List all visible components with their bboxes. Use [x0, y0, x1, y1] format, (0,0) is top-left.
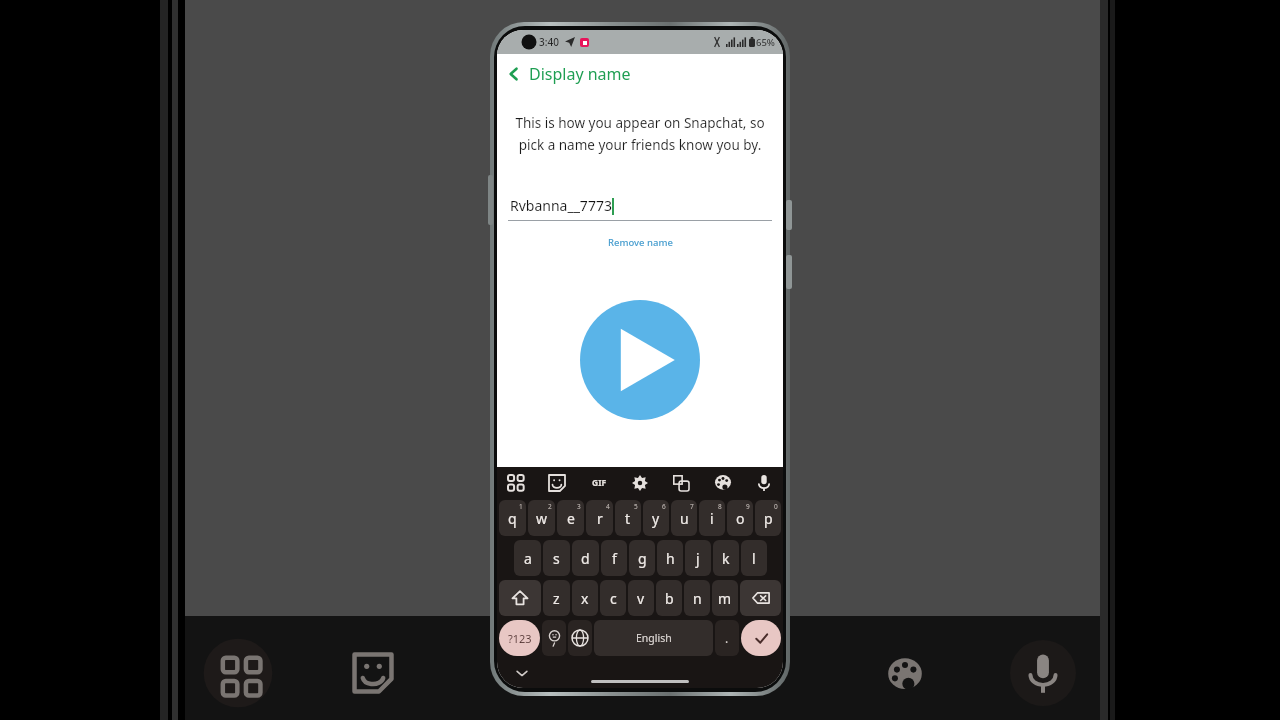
staticText: x [581, 589, 589, 608]
button[interactable]: s [543, 540, 570, 576]
button[interactable]: Backspace [740, 580, 781, 616]
staticText: z [553, 589, 560, 608]
button[interactable]: h [657, 540, 683, 576]
staticText: 5 [634, 502, 638, 511]
staticText: Remove name [608, 236, 673, 249]
staticText: 3 [577, 502, 581, 511]
other: Back [507, 67, 521, 81]
staticText: i [710, 509, 714, 528]
staticText: m [718, 589, 732, 608]
button[interactable]: Hide keyboard [515, 666, 529, 680]
button[interactable]: q [499, 500, 526, 536]
staticText: y [652, 509, 660, 528]
button[interactable]: Apps [503, 470, 529, 496]
button[interactable]: j [685, 540, 711, 576]
button[interactable]: Stickers [544, 470, 570, 496]
button[interactable]: g [629, 540, 655, 576]
staticText: t [625, 509, 631, 528]
staticText: 0 [774, 502, 778, 511]
button[interactable]: k [713, 540, 739, 576]
staticText: u [680, 509, 689, 528]
staticText: s [553, 549, 560, 568]
button[interactable]: l [741, 540, 767, 576]
button[interactable]: p [755, 500, 781, 536]
staticText: 9 [746, 502, 750, 511]
staticText: v [637, 589, 645, 608]
button[interactable]: Play [563, 283, 717, 437]
button[interactable]: t [615, 500, 641, 536]
button[interactable]: z [543, 580, 570, 616]
button[interactable]: Emoji [542, 620, 566, 656]
staticText: 1 [519, 502, 523, 511]
staticText: a [524, 549, 532, 568]
staticText: r [597, 509, 603, 528]
staticText: j [696, 549, 700, 568]
button[interactable]: u [671, 500, 697, 536]
button[interactable]: y [643, 500, 669, 536]
button[interactable]: e [557, 500, 584, 536]
button[interactable]: Theme [710, 470, 736, 496]
button[interactable]: v [628, 580, 654, 616]
button[interactable]: n [684, 580, 710, 616]
staticText: 3:40 [539, 35, 559, 49]
button[interactable]: c [600, 580, 626, 616]
staticText: 65% [756, 36, 775, 49]
button[interactable]: a [514, 540, 541, 576]
staticText: English [636, 631, 672, 645]
button[interactable]: Settings [627, 470, 653, 496]
button[interactable]: ?123 [499, 620, 540, 656]
button[interactable]: GIF [586, 470, 612, 496]
staticText: e [567, 509, 575, 528]
staticText: c [610, 589, 617, 608]
staticText: Display name [529, 63, 631, 85]
staticText: 6 [662, 502, 666, 511]
staticText: l [752, 549, 756, 568]
button[interactable]: r [586, 500, 613, 536]
button[interactable]: m [712, 580, 738, 616]
staticText: This is how you appear on Snapchat, so p… [505, 114, 775, 154]
staticText: Rvbanna__7773 [510, 196, 612, 215]
button[interactable]: Voice input [751, 470, 777, 496]
button[interactable]: . [715, 620, 739, 656]
staticText: o [736, 509, 745, 528]
button[interactable]: Change language [568, 620, 592, 656]
staticText: f [612, 549, 617, 568]
staticText: d [581, 549, 590, 568]
button[interactable]: English [594, 620, 713, 656]
button[interactable]: w [528, 500, 555, 536]
staticText: w [536, 509, 548, 528]
staticText: . [725, 630, 729, 646]
button[interactable]: x [572, 580, 598, 616]
staticText: GIF [592, 477, 607, 489]
button[interactable]: Remove name [497, 236, 783, 249]
staticText: ?123 [508, 631, 532, 646]
staticText: 8 [718, 502, 722, 511]
staticText: n [693, 589, 702, 608]
staticText: 7 [690, 502, 694, 511]
button[interactable]: b [656, 580, 682, 616]
button[interactable]: Enter [741, 620, 781, 656]
button[interactable]: i [699, 500, 725, 536]
staticText: 4 [606, 502, 610, 511]
staticText: h [666, 549, 675, 568]
button[interactable]: d [572, 540, 599, 576]
button[interactable]: Back [497, 54, 783, 94]
staticText: b [665, 589, 674, 608]
staticText: g [638, 549, 647, 568]
staticText: k [722, 549, 730, 568]
button[interactable]: f [601, 540, 627, 576]
staticText: p [764, 509, 773, 528]
staticText: 2 [548, 502, 552, 511]
button[interactable]: o [727, 500, 753, 536]
button[interactable]: Translate [668, 470, 694, 496]
staticText: q [508, 509, 517, 528]
button[interactable]: Shift [499, 580, 541, 616]
